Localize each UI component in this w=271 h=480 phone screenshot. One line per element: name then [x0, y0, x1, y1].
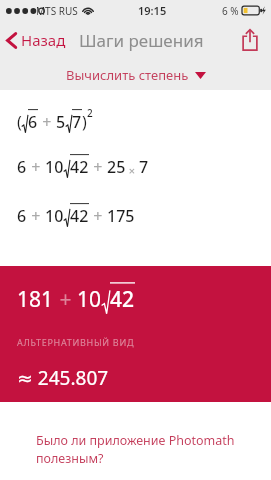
staticText: 10 [45, 205, 64, 227]
staticText: 7 [139, 156, 149, 178]
button[interactable]: Было ли приложение Photomath полезным? [0, 426, 271, 477]
staticText: ( [17, 111, 22, 133]
staticText: + [89, 205, 107, 227]
button[interactable]: 181 [0, 266, 271, 402]
staticText: ≈ 245.807 [17, 365, 109, 391]
staticText: 7 [72, 111, 82, 133]
staticText: 175 [107, 205, 135, 227]
staticText: 2 [87, 106, 93, 120]
staticText: 10 [77, 285, 102, 314]
staticText: 25 [107, 156, 126, 178]
staticText: 19:15 [138, 3, 167, 18]
staticText: 6 [17, 156, 27, 178]
staticText: Назад [21, 30, 66, 50]
staticText: Было ли приложение Photomath полезным? [36, 432, 235, 467]
button[interactable]: Share [229, 23, 271, 57]
staticText: MTS RUS [36, 4, 78, 18]
staticText: 5 [56, 111, 66, 133]
staticText: 10 [45, 156, 64, 178]
button[interactable]: Вычислить степень [0, 59, 271, 90]
staticText: Шаги решения [79, 29, 204, 52]
staticText: ) [82, 111, 87, 133]
staticText: + [27, 205, 45, 227]
staticText: 181 [17, 285, 54, 314]
staticText: 42 [110, 285, 135, 314]
staticText: 6 [17, 205, 27, 227]
staticText: 6 [28, 111, 38, 133]
staticText: Вычислить степень [66, 66, 189, 84]
staticText: + [27, 156, 45, 178]
staticText: + [38, 111, 56, 133]
staticText: × [126, 163, 139, 178]
staticText: 42 [70, 205, 89, 227]
staticText: 42 [70, 156, 89, 178]
staticText: АЛЬТЕРНАТИВНЫЙ ВИД [17, 336, 135, 348]
button[interactable]: Назад [0, 25, 72, 55]
staticText: + [54, 285, 77, 314]
staticText: + [89, 156, 107, 178]
staticText: 6 % [222, 4, 239, 18]
